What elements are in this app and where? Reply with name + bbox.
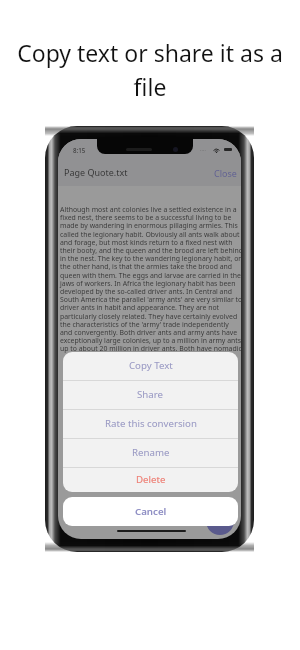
staticText: Page Quote.txt [64,166,128,178]
staticText: queen with them. The eggs and larvae are… [60,271,241,280]
staticText: Copy text or share it as a file [11,37,289,103]
staticText: driver ants in habit and appearance. The… [60,303,220,312]
staticText: and forage, but most kinds return to a f… [60,238,233,247]
staticText: their booty, and the queen and the brood… [60,246,241,255]
button[interactable]: Copy Text [63,352,238,380]
staticText: Cancel [135,505,167,518]
button[interactable]: Share [63,381,238,409]
staticText: 8:15 [73,146,86,154]
staticText: up to about 20 million in driver ants. B… [60,344,241,353]
staticText: Rename [132,446,170,459]
button[interactable]: Cancel [63,497,238,526]
button[interactable]: Delete [63,468,238,492]
staticText: particularly closely related. They have … [60,312,238,321]
staticText: fixed nest, there seems to be a successf… [60,213,232,222]
staticText: jaws of workers. In Africa the legionary… [60,279,236,288]
staticText: Delete [136,473,166,486]
staticText: and convergently. Both driver ants and a… [60,328,238,337]
staticText: Rate this conversion [105,417,197,430]
staticText: in the nest. The key to the wandering le… [60,254,241,263]
button[interactable]: Rate this conversion [63,410,238,438]
staticText: developed by the so-called driver ants. … [60,287,232,296]
staticText: the characteristics of the 'army' trade … [60,320,229,329]
staticText: South America the parallel 'army ants' a… [60,295,241,304]
staticText: made by wandering in enormous pillaging … [60,221,241,230]
staticText: Close [214,167,237,179]
button[interactable]: Rename [63,439,238,467]
staticText: Share [137,388,164,401]
staticText: Although most ant colonies live a settle… [60,205,237,214]
button[interactable]: New note [206,507,234,535]
button[interactable]: Close [210,163,241,183]
staticText: Copy Text [129,359,173,372]
staticText: called the legionary habit. Obviously al… [60,230,240,239]
staticText: the other hand, is that the armies take … [60,262,241,271]
staticText: exceptionally large colonies, up to a mi… [60,336,241,345]
